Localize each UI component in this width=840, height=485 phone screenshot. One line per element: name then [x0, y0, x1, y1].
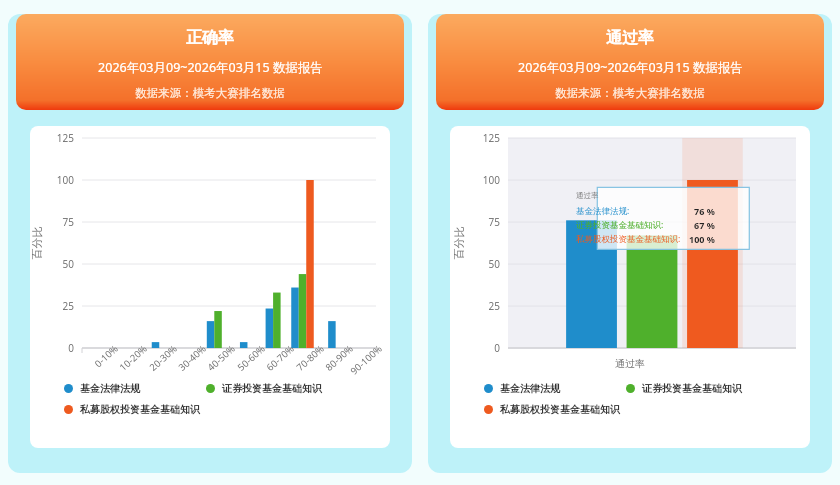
staticText: 2026年03月09~2026年03月15 数据报告 — [98, 59, 323, 76]
staticText: 0 — [468, 341, 500, 355]
staticText: 10-20% — [102, 342, 150, 387]
staticText: 50 — [468, 257, 500, 271]
staticText: 数据来源：模考大赛排名数据 — [555, 86, 705, 100]
staticText: 0-10% — [73, 342, 121, 387]
staticText: 76 % — [694, 205, 715, 217]
staticText: 通过率 — [576, 191, 599, 200]
button[interactable]: 正确率 — [16, 14, 404, 110]
staticText: 100 — [468, 173, 500, 187]
staticText: 125 — [468, 131, 500, 145]
staticText: 百分比 — [30, 226, 43, 259]
staticText: 通过率 — [450, 357, 810, 370]
staticText: 100 — [44, 173, 74, 187]
staticText: 0 — [44, 341, 74, 355]
staticText: 通过率 — [606, 28, 654, 48]
staticText: 私募股权投资基金基础知识 — [500, 403, 620, 416]
button[interactable]: 证券投资基金基础知识 — [206, 382, 366, 395]
staticText: 30-40% — [161, 342, 209, 387]
staticText: 75 — [44, 215, 74, 229]
staticText: 67 % — [694, 219, 715, 231]
staticText: 90-100% — [337, 342, 385, 387]
staticText: 数据来源：模考大赛排名数据 — [135, 86, 285, 100]
button[interactable]: 通过率 — [436, 14, 824, 110]
staticText: 基金法律法规 — [500, 382, 560, 395]
staticText: 证券投资基金基础知识 — [642, 382, 742, 395]
button[interactable]: 私募股权投资基金基础知识 — [484, 403, 684, 416]
staticText: 40-50% — [190, 342, 238, 387]
staticText: 私募股权投资基金基础知识 — [80, 403, 200, 416]
staticText: 证券投资基金基础知识 — [222, 382, 322, 395]
staticText: 证券投资基金基础知识: — [576, 219, 664, 231]
staticText: 25 — [468, 299, 500, 313]
button[interactable]: 基金法律法规 — [484, 382, 626, 395]
staticText: 正确率 — [186, 28, 234, 48]
staticText: 50-60% — [220, 342, 268, 387]
staticText: 25 — [44, 299, 74, 313]
staticText: 私募股权投资基金基础知识: — [576, 233, 681, 245]
staticText: 100 % — [689, 233, 715, 245]
staticText: 基金法律法规: — [576, 205, 630, 217]
button[interactable]: 私募股权投资基金基础知识 — [64, 403, 264, 416]
staticText: 75 — [468, 215, 500, 229]
staticText: 50 — [44, 257, 74, 271]
staticText: 2026年03月09~2026年03月15 数据报告 — [518, 59, 743, 76]
staticText: 百分比 — [451, 226, 465, 259]
staticText: 80-90% — [308, 342, 356, 387]
staticText: 60-70% — [249, 342, 297, 387]
staticText: 70-80% — [279, 342, 327, 387]
staticText: 基金法律法规 — [80, 382, 140, 395]
button[interactable]: 基金法律法规 — [64, 382, 206, 395]
button[interactable]: 证券投资基金基础知识 — [626, 382, 786, 395]
staticText: 20-30% — [132, 342, 180, 387]
staticText: 125 — [44, 131, 74, 145]
